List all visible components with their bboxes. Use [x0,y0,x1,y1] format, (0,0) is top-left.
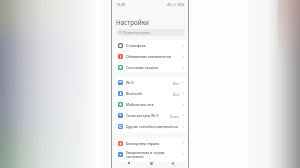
staticText: Мобильная сеть [126,102,182,107]
button[interactable]: Поиск настроек [116,29,185,36]
staticText: Точка доступа Wi-Fi [126,113,170,118]
button[interactable]: Другие способы подключения [114,121,187,132]
staticText: Обновление компонентов [126,54,182,59]
staticText: 4G ıl 94% [167,2,185,7]
button[interactable]: Home [146,158,156,168]
button[interactable]: Состояние защиты [114,62,187,72]
staticText: Выкл. [170,114,180,118]
button[interactable]: Уведомления и строка состояния [114,149,187,160]
staticText: О телефоне [126,43,182,48]
staticText: Поиск настроек [123,30,150,35]
button[interactable]: Обновление компонентов [114,51,187,62]
button[interactable]: Мобильная сеть [114,99,187,110]
staticText: Wi-Fi [126,80,173,85]
staticText: Другие способы подключения [126,124,182,129]
staticText: Вкл. [173,81,180,85]
button[interactable]: Recent apps [124,158,134,168]
button[interactable]: Bluetooth [114,88,187,99]
staticText: Настройки [116,18,149,27]
button[interactable]: Точка доступа Wi-Fi [114,110,187,121]
button[interactable]: Wi-Fi [114,77,187,88]
staticText: Состояние защиты [126,65,182,70]
button[interactable]: Back [167,158,177,168]
staticText: Вкл. [173,92,180,96]
staticText: Bluetooth [126,91,173,96]
staticText: Уведомления и строка состояния [126,150,182,159]
staticText: 13:48 [116,2,126,7]
button[interactable]: О телефоне [114,40,187,51]
staticText: Блокировка экрана [126,141,182,146]
button[interactable]: Блокировка экрана [114,138,187,149]
